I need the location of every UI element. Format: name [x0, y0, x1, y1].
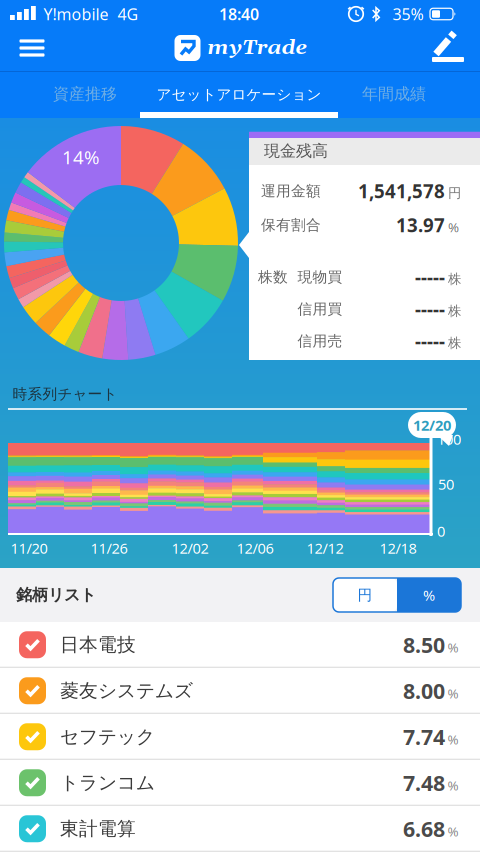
staticText: % — [447, 822, 458, 840]
staticText: myTrade — [207, 35, 307, 61]
staticText: 日本電技 — [60, 633, 136, 656]
staticText: 1,541,578 — [358, 179, 445, 203]
staticText: 12/18 — [379, 538, 416, 558]
staticText: 円 — [357, 586, 372, 604]
staticText: ----- — [415, 329, 445, 353]
staticText: 12/06 — [236, 538, 273, 558]
staticText: % — [448, 218, 459, 236]
staticText: 円 — [448, 185, 461, 201]
button[interactable]: % — [397, 578, 461, 612]
button[interactable]: 円 — [333, 578, 397, 612]
staticText: 菱友システムズ — [60, 679, 193, 702]
staticText: 株 — [448, 303, 461, 319]
staticText: 7.48 — [403, 769, 445, 797]
staticText: 信用売 — [297, 332, 342, 350]
staticText: アセットアロケーション — [156, 85, 321, 103]
button[interactable]: トランコム — [0, 760, 480, 806]
staticText: % — [447, 776, 458, 794]
button[interactable]: 菱友システムズ — [0, 668, 480, 714]
staticText: 年間成績 — [362, 84, 426, 104]
staticText: トランコム — [60, 771, 155, 794]
staticText: 50 — [438, 474, 454, 494]
staticText: 12/20 — [413, 415, 451, 435]
button[interactable]: 東計電算 — [0, 806, 480, 852]
button[interactable]: 年間成績 — [319, 71, 469, 117]
staticText: 100 — [437, 429, 461, 449]
button[interactable]: セフテック — [0, 714, 480, 760]
staticText: 8.50 — [403, 631, 445, 659]
button[interactable]: Edit — [431, 32, 465, 64]
staticText: 4G — [117, 3, 138, 25]
staticText: 東計電算 — [60, 817, 136, 840]
staticText: 14% — [62, 145, 100, 169]
staticText: Y!mobile — [43, 3, 108, 25]
staticText: 18:40 — [219, 3, 259, 25]
staticText: 時系列チャート — [12, 385, 117, 403]
staticText: 13.97 — [396, 213, 445, 237]
staticText: 株 — [448, 271, 461, 287]
staticText: 現金残高 — [264, 141, 328, 161]
staticText: セフテック — [60, 725, 155, 748]
staticText: 信用買 — [297, 300, 342, 318]
staticText: 11/20 — [10, 538, 47, 558]
staticText: % — [447, 684, 458, 702]
staticText: 12/02 — [171, 538, 208, 558]
staticText: 株 — [448, 335, 461, 351]
staticText: 8.00 — [403, 677, 445, 705]
staticText: 現物買 — [297, 268, 342, 286]
staticText: % — [423, 585, 435, 605]
staticText: 銘柄リスト — [16, 585, 96, 605]
staticText: 保有割合 — [261, 216, 321, 234]
staticText: ----- — [415, 297, 445, 321]
staticText: 0 — [437, 521, 445, 541]
staticText: % — [447, 730, 458, 748]
staticText: 資産推移 — [53, 84, 117, 104]
staticText: 7.74 — [403, 723, 445, 751]
staticText: 12/12 — [306, 538, 343, 558]
staticText: 株数 — [258, 268, 288, 286]
staticText: 35% — [392, 3, 423, 25]
staticText: % — [447, 638, 458, 656]
button[interactable]: アセットアロケーション — [124, 71, 354, 118]
button[interactable]: Menu — [12, 31, 52, 65]
staticText: 11/26 — [90, 538, 127, 558]
button[interactable]: 日本電技 — [0, 622, 480, 668]
staticText: 6.68 — [403, 815, 445, 843]
button[interactable]: 資産推移 — [10, 71, 160, 117]
staticText: 運用金額 — [261, 182, 321, 200]
staticText: ----- — [415, 265, 445, 289]
